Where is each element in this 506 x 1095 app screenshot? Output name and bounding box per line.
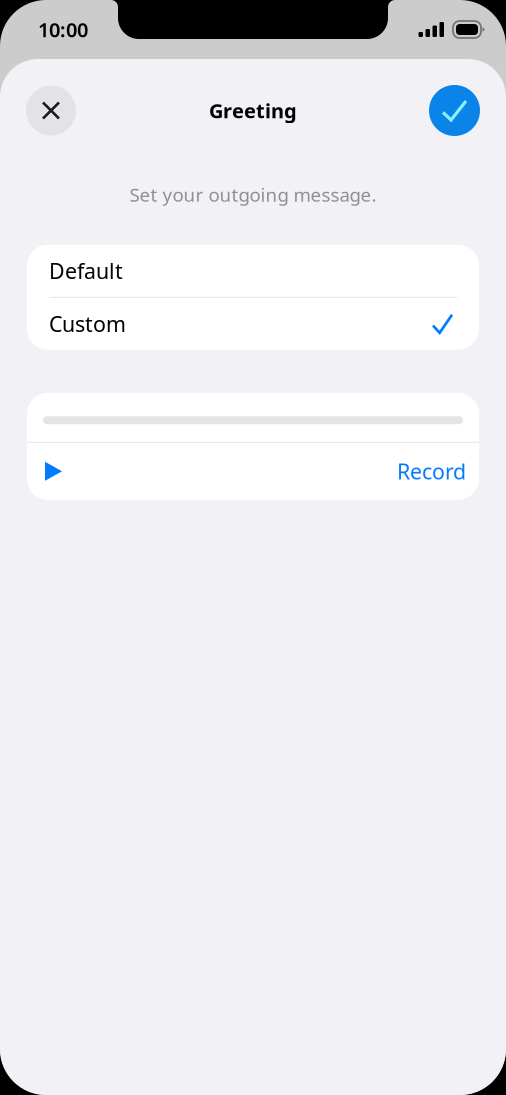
button[interactable]: Close: [26, 85, 76, 135]
staticText: Greeting: [209, 97, 297, 124]
staticText: Custom: [49, 310, 126, 338]
button[interactable]: Record: [27, 443, 479, 500]
staticText: Set your outgoing message.: [129, 182, 376, 207]
button[interactable]: Default: [27, 245, 479, 297]
staticText: Default: [49, 257, 123, 285]
staticText: 10:00: [38, 16, 88, 43]
button[interactable]: Custom: [27, 298, 479, 350]
staticText: Record: [397, 457, 466, 485]
button[interactable]: Done: [429, 85, 480, 136]
